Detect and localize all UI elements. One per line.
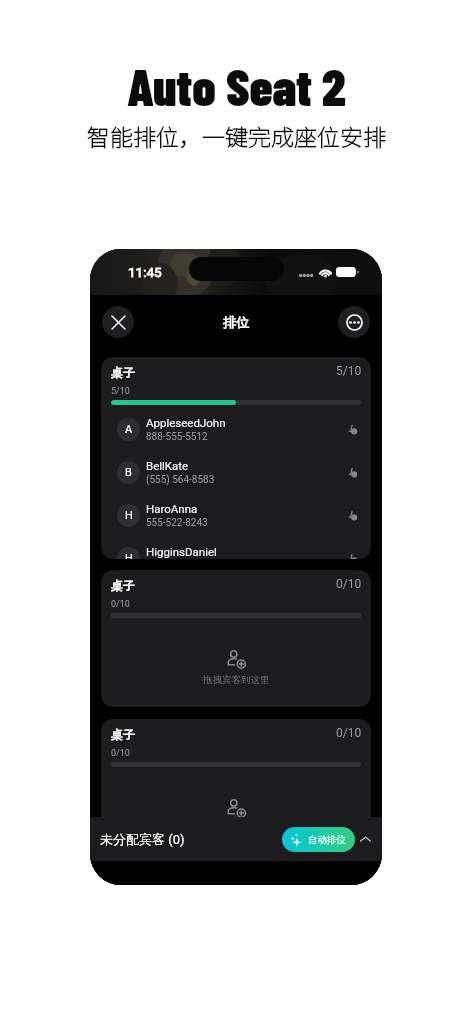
button[interactable]: H: [117, 494, 358, 537]
staticText: 未分配宾客 (0): [100, 831, 185, 847]
staticText: 桌子: [111, 365, 135, 380]
staticText: 0/10: [336, 726, 362, 740]
button[interactable]: 未分配宾客 (0): [100, 817, 376, 861]
staticText: 拖拽宾客到这里: [203, 674, 270, 686]
button[interactable]: 自动排位: [282, 827, 355, 852]
button[interactable]: 桌子: [101, 719, 371, 856]
button[interactable]: 关闭: [102, 306, 134, 338]
staticText: Auto Seat 2: [127, 55, 346, 116]
button[interactable]: B: [117, 451, 358, 494]
button[interactable]: 更多选项: [338, 306, 370, 338]
button[interactable]: H: [117, 537, 358, 559]
staticText: HaroAnna: [146, 502, 198, 515]
staticText: A: [125, 423, 133, 436]
staticText: 排位: [223, 314, 249, 330]
staticText: 11:45: [128, 264, 162, 280]
staticText: (555) 564-8583: [146, 474, 215, 486]
staticText: AppleseedJohn: [146, 416, 226, 429]
staticText: 0/10: [111, 748, 130, 759]
staticText: H: [125, 552, 133, 559]
staticText: 自动排位: [308, 834, 346, 846]
staticText: 0/10: [111, 599, 130, 610]
button[interactable]: 桌子: [101, 570, 371, 707]
staticText: HigginsDaniel: [146, 545, 217, 558]
staticText: 555-522-8243: [146, 517, 208, 529]
staticText: 桌子: [111, 727, 135, 742]
button[interactable]: 展开未分配宾客: [355, 829, 376, 850]
staticText: B: [125, 466, 132, 479]
staticText: H: [125, 509, 133, 522]
staticText: 5/10: [111, 386, 130, 397]
staticText: BellKate: [146, 459, 189, 472]
button[interactable]: 桌子: [101, 357, 371, 559]
staticText: 桌子: [111, 578, 135, 593]
button[interactable]: A: [117, 408, 358, 451]
staticText: 888-555-5512: [146, 431, 208, 443]
staticText: 0/10: [336, 577, 362, 591]
staticText: 5/10: [336, 364, 362, 378]
staticText: 智能排位，一键完成座位安排: [87, 119, 386, 152]
